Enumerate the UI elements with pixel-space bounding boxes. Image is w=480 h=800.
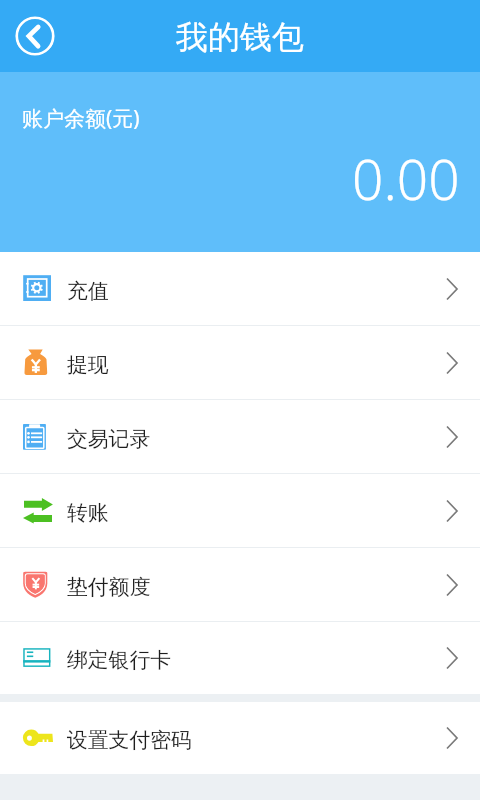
- staticText: 0.00: [352, 141, 460, 216]
- button[interactable]: 交易记录: [0, 400, 480, 473]
- button[interactable]: 转账: [0, 474, 480, 547]
- button[interactable]: Back: [15, 16, 55, 56]
- button[interactable]: 充值: [0, 252, 480, 325]
- button[interactable]: 垫付额度: [0, 548, 480, 621]
- staticText: 提现: [67, 352, 109, 378]
- staticText: 设置支付密码: [67, 727, 192, 753]
- staticText: 绑定银行卡: [67, 647, 171, 673]
- staticText: 转账: [67, 500, 109, 526]
- button[interactable]: 绑定银行卡: [0, 622, 480, 694]
- staticText: 账户余额(元): [22, 104, 140, 133]
- staticText: 垫付额度: [67, 574, 151, 600]
- button[interactable]: 提现: [0, 326, 480, 399]
- staticText: 我的钱包: [176, 17, 304, 57]
- staticText: 交易记录: [67, 426, 151, 452]
- staticText: 充值: [67, 278, 109, 304]
- button[interactable]: 设置支付密码: [0, 702, 480, 774]
